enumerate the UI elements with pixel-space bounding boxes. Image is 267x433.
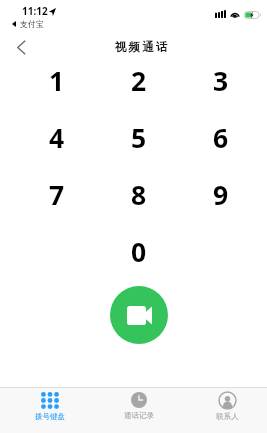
staticText: 2 — [131, 63, 147, 99]
button[interactable]: 拨号键盘 — [5, 388, 94, 421]
button[interactable]: 6 — [180, 109, 262, 166]
button[interactable]: 联系人 — [183, 388, 267, 421]
button[interactable]: 4 — [16, 109, 98, 166]
staticText: 11:12 — [22, 4, 48, 18]
button[interactable]: 7 — [16, 166, 98, 223]
staticText: 9 — [213, 177, 229, 213]
button[interactable]: Back — [5, 32, 37, 62]
button[interactable]: 通话记录 — [94, 388, 183, 420]
staticText: 通话记录 — [124, 411, 154, 420]
staticText: 视频通话 — [115, 40, 170, 55]
staticText: 联系人 — [216, 412, 239, 421]
button[interactable]: 3 — [180, 52, 262, 109]
staticText: 0 — [131, 234, 147, 270]
staticText: 1 — [49, 63, 65, 99]
button[interactable]: Video call — [110, 286, 168, 344]
button[interactable]: 0 — [98, 223, 180, 280]
staticText: 4 — [49, 120, 65, 156]
button[interactable]: 2 — [98, 52, 180, 109]
staticText: 拨号键盘 — [35, 412, 65, 421]
staticText: 5 — [131, 120, 147, 156]
button[interactable]: 9 — [180, 166, 262, 223]
button[interactable]: 8 — [98, 166, 180, 223]
button[interactable]: 1 — [16, 52, 98, 109]
button[interactable]: 5 — [98, 109, 180, 166]
staticText: 8 — [131, 177, 147, 213]
staticText: 支付宝 — [20, 19, 44, 29]
staticText: 6 — [213, 120, 229, 156]
staticText: 3 — [213, 63, 229, 99]
staticText: 7 — [49, 177, 65, 213]
